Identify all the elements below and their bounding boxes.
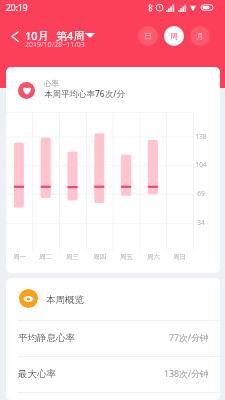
staticText: 77次/分钟	[169, 332, 209, 344]
staticText: 34	[197, 218, 205, 227]
staticText: 周四	[93, 253, 106, 261]
button[interactable]: 平均静息心率	[6, 320, 220, 356]
staticText: 本周平均心率76次/分	[44, 88, 125, 100]
staticText: 周二	[39, 253, 52, 261]
staticText: 2019/10/28~11/03	[25, 40, 85, 50]
staticText: 第4周	[56, 28, 85, 43]
staticText: 周一	[13, 253, 26, 261]
staticText: 10月	[25, 28, 49, 43]
staticText: 周三	[66, 253, 79, 261]
button[interactable]: 日	[138, 26, 158, 46]
staticText: 138	[195, 132, 207, 141]
staticText: 月	[196, 31, 204, 41]
staticText: 心率	[44, 79, 59, 88]
staticText: 平均静息心率	[18, 332, 75, 344]
staticText: 最大心率	[18, 368, 56, 380]
staticText: 104	[195, 160, 207, 169]
staticText: 本周概览	[46, 294, 84, 306]
button[interactable]: Back	[5, 26, 25, 46]
button[interactable]: 月	[190, 26, 210, 46]
staticText: 69	[197, 189, 205, 198]
button[interactable]: 周	[164, 26, 184, 46]
staticText: 周	[170, 31, 178, 41]
staticText: 20:19	[6, 2, 28, 14]
button[interactable]: 最大心率	[6, 356, 220, 392]
staticText: 日	[144, 31, 152, 41]
staticText: 周日	[173, 253, 186, 261]
staticText: 周五	[120, 253, 133, 261]
staticText: 周六	[147, 253, 160, 261]
staticText: 138次/分钟	[164, 368, 209, 380]
